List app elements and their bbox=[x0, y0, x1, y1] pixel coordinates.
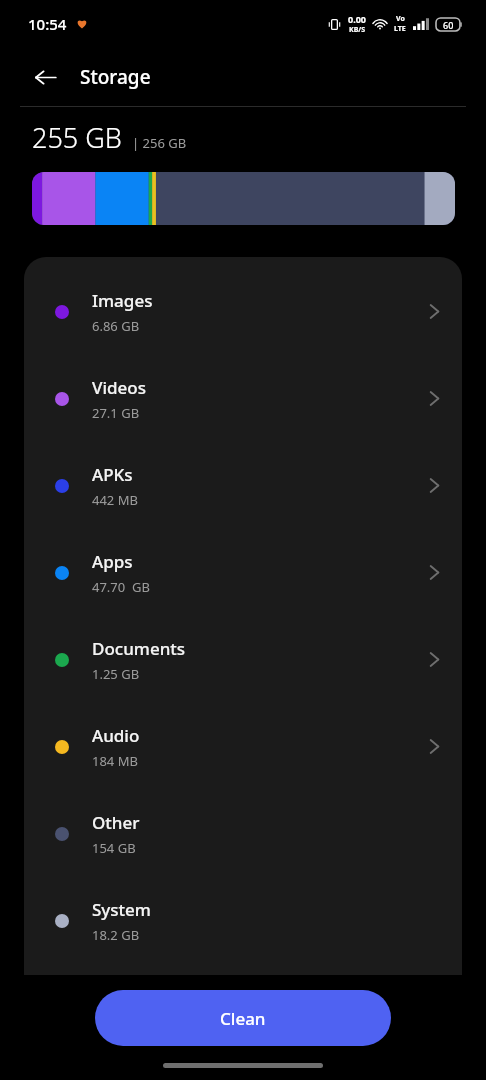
button[interactable]: Other bbox=[24, 790, 462, 877]
staticText: APKs bbox=[92, 463, 133, 486]
button[interactable]: Clean bbox=[95, 990, 391, 1046]
staticText: KB/S bbox=[349, 25, 366, 35]
staticText: System bbox=[92, 898, 151, 921]
staticText: 1.25 GB bbox=[92, 665, 140, 683]
staticText: Vo bbox=[396, 14, 405, 24]
button[interactable]: Apps bbox=[24, 529, 462, 616]
staticText: 47.70 GB bbox=[92, 578, 150, 596]
staticText: Storage bbox=[80, 64, 151, 90]
staticText: 10:54 bbox=[28, 14, 67, 34]
staticText: Images bbox=[92, 289, 153, 312]
staticText: Clean bbox=[220, 1007, 266, 1030]
button[interactable]: Videos bbox=[24, 355, 462, 442]
staticText: 60 bbox=[443, 19, 454, 31]
button[interactable]: Images bbox=[24, 268, 462, 355]
button[interactable]: Documents bbox=[24, 616, 462, 703]
staticText: | 256 GB bbox=[132, 134, 187, 152]
staticText: Apps bbox=[92, 550, 133, 573]
button[interactable]: System bbox=[24, 877, 462, 964]
staticText: 6.86 GB bbox=[92, 317, 140, 335]
staticText: Videos bbox=[92, 376, 146, 399]
staticText: 27.1 GB bbox=[92, 404, 140, 422]
button[interactable]: Back bbox=[26, 58, 64, 96]
staticText: 184 MB bbox=[92, 752, 138, 770]
staticText: 154 GB bbox=[92, 839, 136, 857]
staticText: 18.2 GB bbox=[92, 926, 140, 944]
staticText: LTE bbox=[394, 24, 406, 34]
staticText: 255 GB bbox=[32, 119, 122, 156]
button[interactable]: APKs bbox=[24, 442, 462, 529]
staticText: Other bbox=[92, 811, 140, 834]
staticText: Documents bbox=[92, 637, 186, 660]
button[interactable]: Audio bbox=[24, 703, 462, 790]
staticText: 0.00 bbox=[348, 13, 366, 25]
staticText: Audio bbox=[92, 724, 140, 747]
staticText: 442 MB bbox=[92, 491, 138, 509]
